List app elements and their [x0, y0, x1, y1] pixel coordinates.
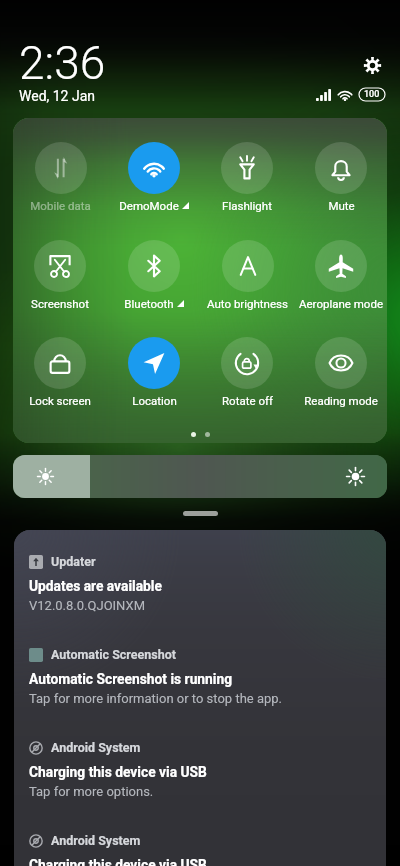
button[interactable]: Bluetooth	[107, 240, 201, 328]
staticText: Tap for more options.	[29, 784, 154, 799]
staticText: V12.0.8.0.QJOINXM	[29, 598, 145, 613]
staticText: Auto brightness	[207, 297, 288, 310]
staticText: DemoMode	[119, 199, 179, 212]
staticText: Mute	[328, 199, 355, 212]
staticText: Charging this device via USB	[29, 857, 207, 866]
staticText: Screenshot	[31, 297, 89, 310]
button[interactable]: Updater	[29, 554, 374, 634]
staticText: Wed, 12 Jan	[19, 88, 96, 104]
staticText: Reading mode	[304, 394, 378, 407]
staticText: Automatic Screenshot	[51, 647, 177, 662]
staticText: Location	[132, 394, 177, 407]
staticText: Android System	[51, 740, 141, 755]
staticText: Android System	[51, 833, 141, 848]
button[interactable]: Lock screen	[13, 337, 107, 425]
button[interactable]: Auto brightness	[200, 240, 294, 328]
staticText: 100	[364, 89, 380, 100]
staticText: Rotate off	[222, 394, 273, 407]
staticText: Updates are available	[29, 578, 162, 594]
button[interactable]: Automatic Screenshot	[29, 647, 374, 727]
staticText: Lock screen	[29, 394, 91, 407]
button[interactable]: Screenshot	[13, 240, 107, 328]
button[interactable]: Settings	[358, 51, 386, 79]
staticText: Aeroplane mode	[299, 297, 383, 310]
staticText: Flashlight	[222, 199, 272, 212]
button[interactable]: Reading mode	[294, 337, 387, 425]
button[interactable]: Android System	[29, 833, 374, 866]
staticText: Mobile data	[30, 199, 91, 212]
button[interactable]: Flashlight	[200, 142, 294, 230]
button[interactable]: Brightness	[13, 455, 387, 498]
button[interactable]: Aeroplane mode	[294, 240, 387, 328]
staticText: 2:36	[19, 36, 106, 90]
button[interactable]: Location	[107, 337, 201, 425]
staticText: Charging this device via USB	[29, 764, 207, 780]
button[interactable]: Mute	[294, 142, 387, 230]
staticText: Updater	[51, 554, 96, 569]
button[interactable]: Mobile data	[13, 142, 107, 230]
staticText: Bluetooth	[124, 297, 174, 310]
staticText: Tap for more information or to stop the …	[29, 691, 283, 706]
button[interactable]: Android System	[29, 740, 374, 820]
button[interactable]: Rotate off	[200, 337, 294, 425]
button[interactable]: DemoMode	[107, 142, 201, 230]
staticText: Automatic Screenshot is running	[29, 671, 233, 687]
